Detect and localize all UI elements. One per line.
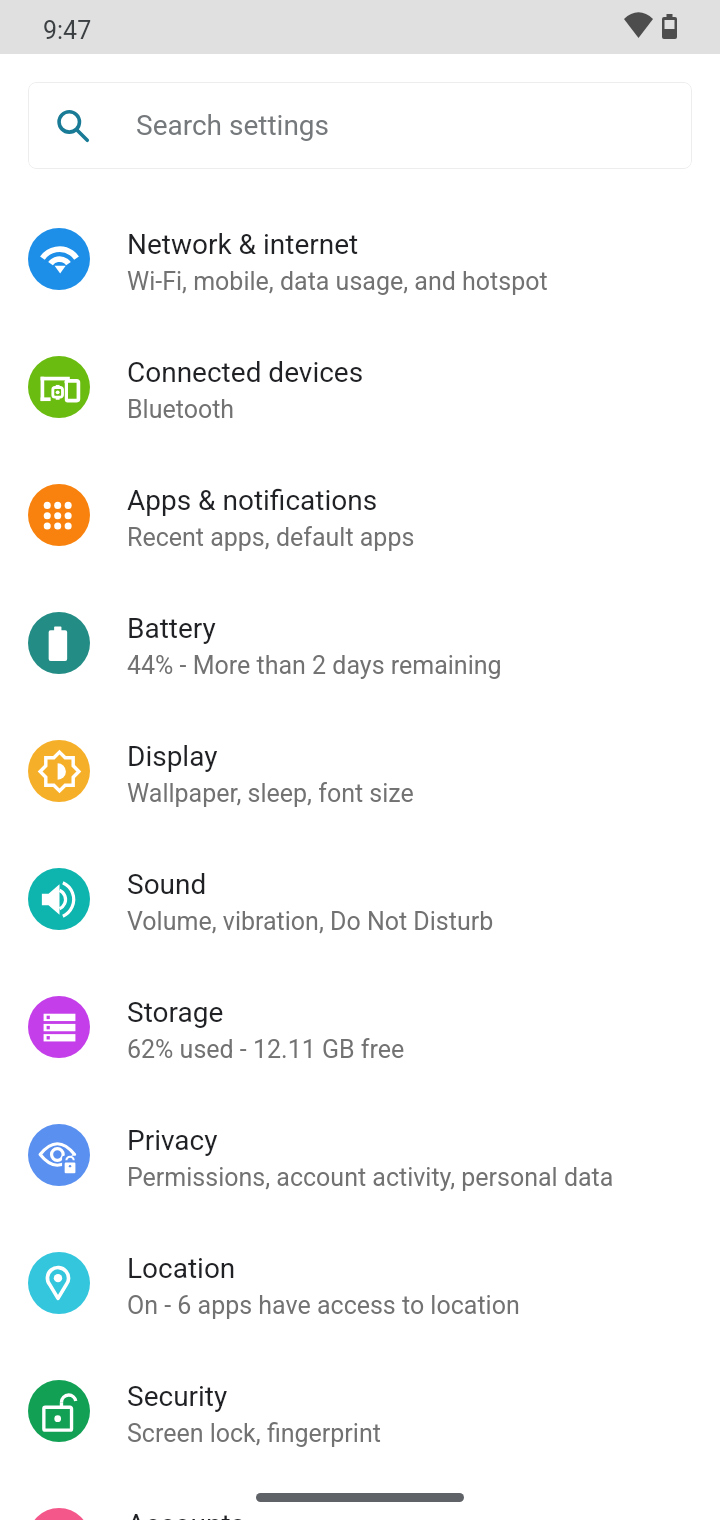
button[interactable]: Sound (0, 835, 720, 963)
button[interactable]: Battery (0, 579, 720, 707)
staticText: Security (127, 1380, 228, 1413)
staticText: Wi-Fi, mobile, data usage, and hotspot (127, 267, 548, 296)
staticText: Bluetooth (127, 395, 235, 424)
staticText: Location (127, 1252, 236, 1285)
button[interactable]: Storage (0, 963, 720, 1091)
staticText: On - 6 apps have access to location (127, 1291, 520, 1320)
button[interactable]: Connected devices (0, 323, 720, 451)
staticText: Recent apps, default apps (127, 523, 415, 552)
button[interactable]: Privacy (0, 1091, 720, 1219)
staticText: Battery (127, 612, 216, 645)
staticText: Connected devices (127, 356, 364, 389)
button[interactable]: Accounts (0, 1475, 720, 1520)
button[interactable]: Apps & notifications (0, 451, 720, 579)
staticText: Sound (127, 868, 207, 901)
staticText: Search settings (136, 109, 330, 142)
other: Search (56, 109, 90, 143)
button[interactable]: Search (28, 82, 692, 169)
staticText: Accounts (127, 1508, 246, 1520)
staticText: Wallpaper, sleep, font size (127, 779, 414, 808)
staticText: Screen lock, fingerprint (127, 1419, 381, 1448)
staticText: 44% - More than 2 days remaining (127, 651, 502, 680)
staticText: Display (127, 740, 218, 773)
staticText: Storage (127, 996, 224, 1029)
staticText: 9:47 (43, 16, 92, 45)
staticText: Apps & notifications (127, 484, 378, 517)
staticText: Volume, vibration, Do Not Disturb (127, 907, 494, 936)
other: Wi-Fi signal and battery status (624, 13, 678, 41)
staticText: Network & internet (127, 228, 359, 261)
button[interactable]: Location (0, 1219, 720, 1347)
staticText: 62% used - 12.11 GB free (127, 1035, 405, 1064)
staticText: Privacy (127, 1124, 218, 1157)
button[interactable]: Network & internet (0, 195, 720, 323)
staticText: Permissions, account activity, personal … (127, 1163, 614, 1192)
button[interactable]: Security (0, 1347, 720, 1475)
button[interactable]: Display (0, 707, 720, 835)
